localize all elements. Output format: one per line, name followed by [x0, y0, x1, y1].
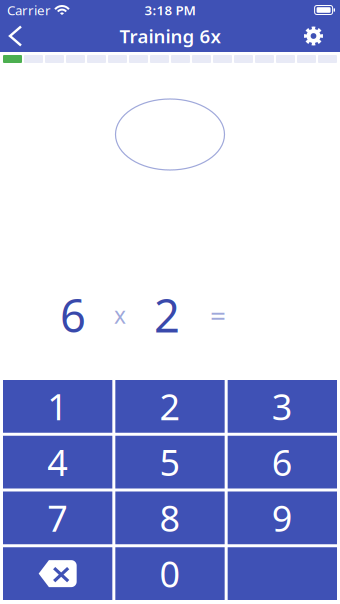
staticText: =: [210, 296, 226, 333]
staticText: 1: [47, 382, 68, 430]
staticText: 7: [47, 494, 68, 542]
button[interactable]: Settings: [288, 20, 340, 51]
staticText: 8: [159, 494, 180, 542]
staticText: Training 6x: [119, 24, 220, 48]
button[interactable]: 4: [3, 436, 112, 489]
staticText: 6: [60, 285, 86, 345]
button[interactable]: 7: [3, 491, 112, 544]
button[interactable]: 9: [228, 491, 337, 544]
staticText: 6: [272, 438, 293, 486]
staticText: 0: [159, 550, 180, 597]
staticText: 9: [272, 494, 293, 542]
button[interactable]: 8: [115, 491, 225, 544]
staticText: 2: [159, 382, 180, 430]
staticText: 4: [47, 438, 68, 486]
button[interactable]: 3: [228, 380, 337, 433]
button[interactable]: 1: [3, 380, 112, 433]
button[interactable]: 0: [115, 547, 225, 600]
staticText: 2: [154, 285, 180, 345]
staticText: 5: [159, 438, 180, 486]
staticText: x: [114, 300, 126, 330]
staticText: Carrier: [7, 1, 51, 19]
button[interactable]: 5: [115, 436, 225, 489]
button[interactable]: Back: [0, 20, 37, 51]
button[interactable]: Delete: [3, 547, 112, 600]
button[interactable]: Blank: [228, 547, 337, 600]
staticText: 3:18 PM: [144, 1, 195, 19]
staticText: 3: [272, 382, 293, 430]
button[interactable]: 2: [115, 380, 225, 433]
button[interactable]: 6: [228, 436, 337, 489]
